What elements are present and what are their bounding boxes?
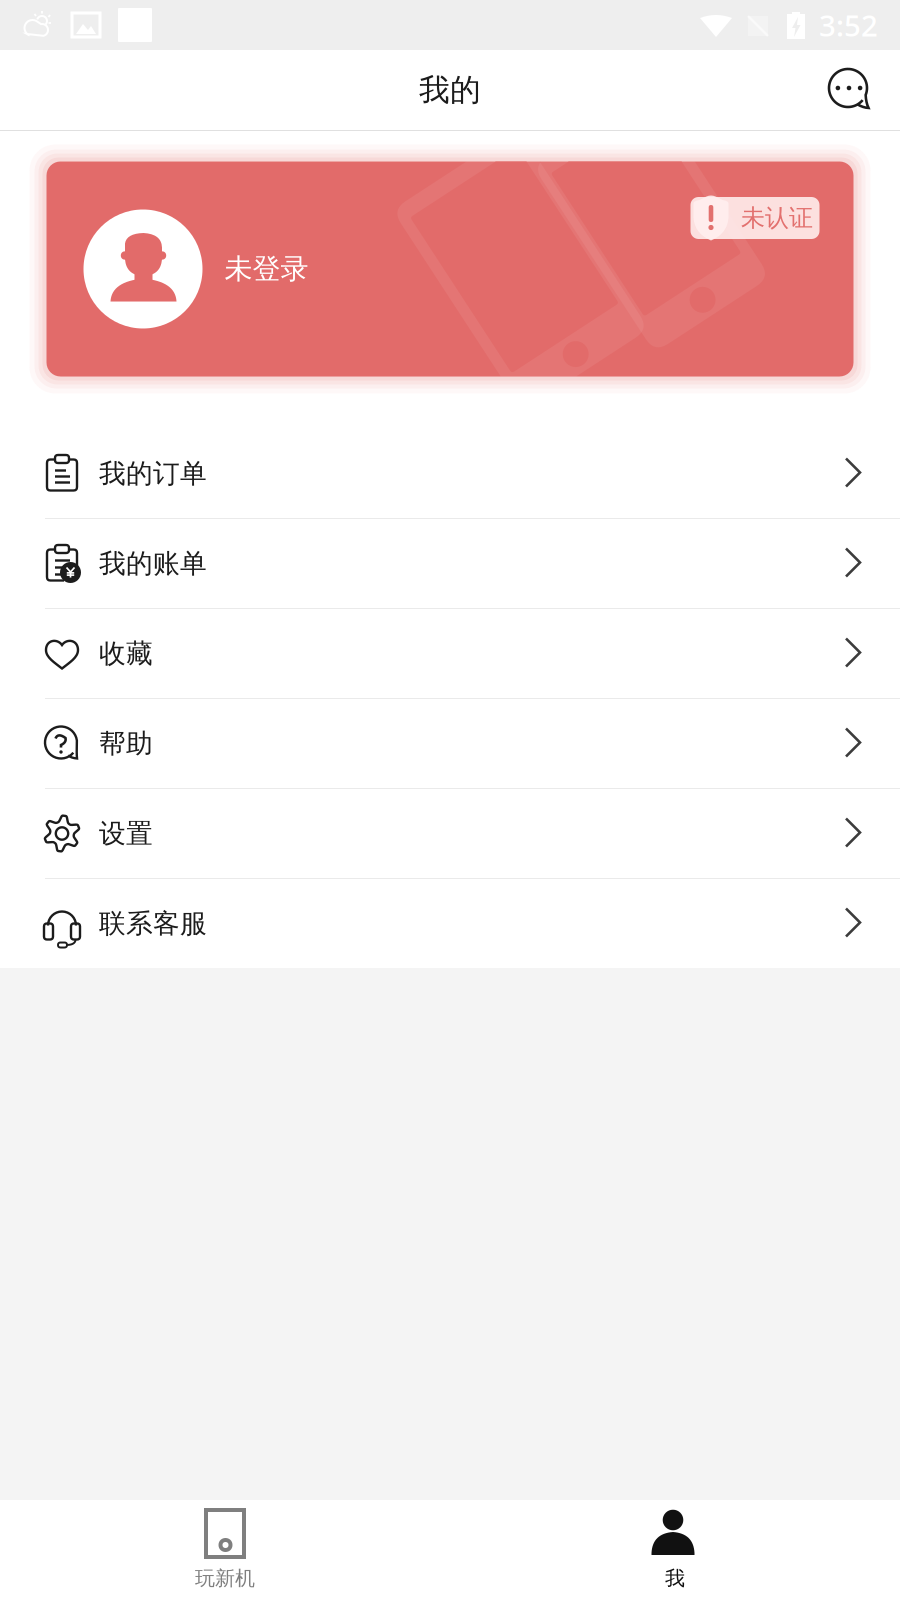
button[interactable]: 未登录 — [20, 139, 880, 399]
button[interactable]: 玩新机 — [0, 1500, 450, 1600]
staticText: 未认证 — [741, 203, 813, 233]
staticText: 我 — [665, 1566, 685, 1591]
staticText: 收藏 — [99, 637, 153, 670]
button[interactable]: 联系客服 — [0, 879, 900, 968]
button[interactable]: 收藏 — [0, 609, 900, 698]
staticText: 我的账单 — [99, 547, 207, 580]
staticText: 设置 — [99, 817, 153, 850]
button[interactable]: 帮助 — [0, 699, 900, 788]
staticText: 玩新机 — [195, 1566, 255, 1591]
staticText: 我的订单 — [99, 457, 207, 490]
staticText: 我的 — [419, 71, 481, 109]
staticText: 帮助 — [99, 727, 153, 760]
button[interactable]: 消息 — [800, 50, 900, 130]
staticText: 联系客服 — [99, 907, 207, 940]
button[interactable]: 设置 — [0, 789, 900, 878]
staticText: 未登录 — [224, 252, 308, 286]
staticText: 3:52 — [819, 5, 878, 44]
button[interactable]: 我的订单 — [0, 429, 900, 518]
button[interactable]: 我的账单 — [0, 519, 900, 608]
button[interactable]: 我 — [450, 1500, 900, 1600]
